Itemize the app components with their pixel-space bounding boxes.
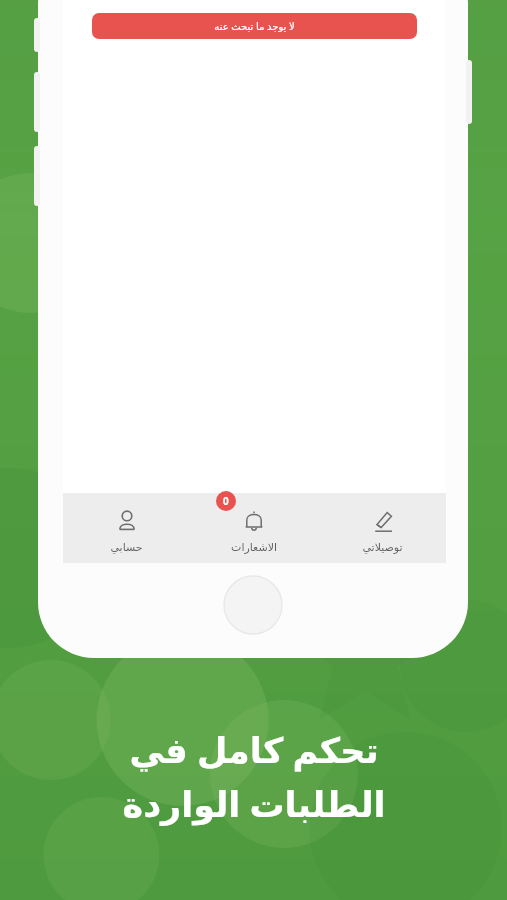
other: 0 notifications bbox=[216, 491, 236, 511]
button[interactable]: الاشعارات bbox=[190, 493, 318, 563]
staticText: 0 bbox=[223, 494, 229, 508]
button[interactable]: لا يوجد ما تبحث عنه bbox=[92, 13, 417, 39]
staticText: الطلبات الواردة bbox=[122, 780, 386, 828]
staticText: توصيلاتي bbox=[362, 541, 403, 554]
staticText: تحكم كامل في bbox=[129, 726, 379, 774]
staticText: الاشعارات bbox=[231, 541, 277, 554]
staticText: لا يوجد ما تبحث عنه bbox=[214, 19, 295, 33]
button[interactable]: توصيلاتي bbox=[318, 493, 446, 563]
button[interactable]: حسابي bbox=[63, 493, 190, 563]
staticText: حسابي bbox=[110, 541, 143, 554]
